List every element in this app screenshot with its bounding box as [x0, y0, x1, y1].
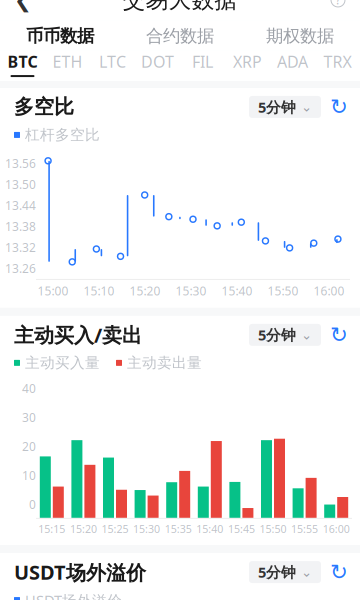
button[interactable]: XRP	[225, 51, 270, 81]
staticText: 13.44	[5, 197, 36, 213]
staticText: 15:40	[221, 283, 252, 299]
button[interactable]: 币币数据	[0, 21, 120, 51]
staticText: 13.38	[5, 218, 36, 234]
staticText: 16:00	[313, 283, 344, 299]
staticText: 15:25	[101, 522, 128, 536]
button[interactable]: Help	[316, 0, 360, 21]
staticText: 5分钟	[258, 97, 296, 117]
staticText: DOT	[141, 51, 174, 72]
staticText: USDT场外溢价	[14, 559, 146, 585]
staticText: 15:15	[38, 522, 65, 536]
staticText: LTC	[99, 51, 126, 72]
staticText: 15:50	[259, 522, 286, 536]
staticText: 15:30	[133, 522, 160, 536]
staticText: ⌄	[301, 564, 312, 580]
button[interactable]: DOT	[135, 51, 180, 81]
button[interactable]: 期权数据	[240, 21, 360, 51]
staticText: 15:45	[228, 522, 255, 536]
staticText: ADA	[277, 51, 308, 72]
staticText: 10	[22, 467, 36, 483]
button[interactable]: BTC	[0, 51, 45, 81]
staticText: 期权数据	[266, 25, 334, 47]
staticText: 40	[22, 380, 36, 396]
button[interactable]: FIL	[180, 51, 225, 81]
button[interactable]: Refresh	[321, 321, 357, 349]
button[interactable]: 5分钟	[249, 324, 321, 346]
staticText: XRP	[233, 51, 262, 72]
staticText: 多空比	[14, 95, 74, 119]
staticText: 币币数据	[26, 25, 94, 47]
staticText: 15:00	[37, 283, 68, 299]
staticText: 15:10	[83, 283, 114, 299]
staticText: 13.26	[5, 260, 36, 276]
staticText: ❮	[14, 0, 32, 12]
button[interactable]: Refresh	[321, 93, 357, 121]
staticText: 20	[22, 438, 36, 454]
staticText: 13.50	[5, 176, 36, 192]
button[interactable]: TRX	[315, 51, 360, 81]
button[interactable]: 5分钟	[249, 561, 321, 583]
button[interactable]: 5分钟	[249, 96, 321, 118]
staticText: TRX	[323, 51, 351, 72]
staticText: ↻	[330, 323, 348, 347]
staticText: 5分钟	[258, 562, 296, 582]
staticText: ↻	[330, 95, 348, 119]
staticText: 13.56	[5, 155, 36, 171]
staticText: 合约数据	[146, 25, 214, 47]
staticText: 5分钟	[258, 325, 296, 345]
staticText: ⌄	[301, 327, 312, 342]
staticText: 交易大数据	[122, 0, 237, 14]
button[interactable]: LTC	[90, 51, 135, 81]
staticText: 15:55	[291, 522, 318, 536]
staticText: 30	[22, 409, 36, 425]
staticText: 15:20	[70, 522, 97, 536]
staticText: 杠杆多空比	[25, 126, 100, 144]
staticText: ETH	[52, 51, 82, 72]
staticText: ↻	[330, 560, 348, 584]
staticText: FIL	[192, 51, 213, 72]
staticText: ?	[335, 0, 340, 8]
staticText: 15:35	[165, 522, 192, 536]
staticText: 主动买入/卖出	[14, 322, 142, 348]
staticText: 0	[29, 496, 36, 512]
staticText: 15:50	[267, 283, 298, 299]
button[interactable]: Refresh	[321, 558, 357, 586]
staticText: ⌄	[301, 99, 312, 114]
staticText: 主动卖出量	[127, 354, 202, 372]
staticText: 15:20	[129, 283, 160, 299]
staticText: USDT场外溢价	[25, 590, 122, 600]
staticText: 15:30	[175, 283, 206, 299]
staticText: 15:40	[196, 522, 223, 536]
button[interactable]: ETH	[45, 51, 90, 81]
staticText: 主动买入量	[25, 354, 100, 372]
button[interactable]: ADA	[270, 51, 315, 81]
staticText: BTC	[7, 51, 37, 72]
button[interactable]: Back	[0, 0, 46, 21]
staticText: 13.32	[5, 239, 36, 255]
staticText: 16:00	[323, 522, 350, 536]
button[interactable]: 合约数据	[120, 21, 240, 51]
